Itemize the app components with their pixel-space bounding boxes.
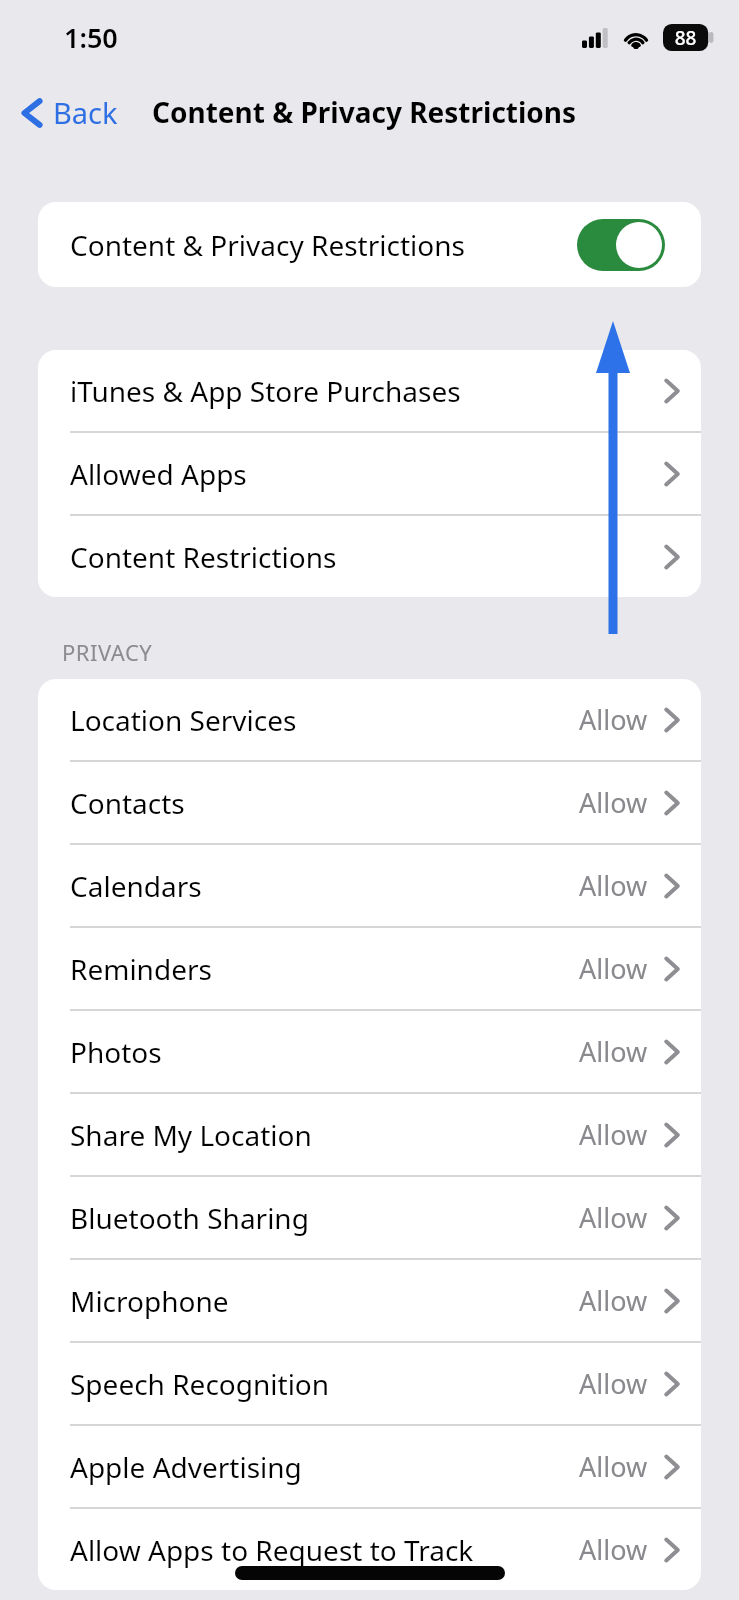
- staticText: Allow Apps to Request to Track: [70, 1531, 579, 1569]
- button[interactable]: Content Restrictions: [38, 516, 701, 597]
- staticText: Calendars: [70, 867, 579, 905]
- staticText: Apple Advertising: [70, 1448, 579, 1486]
- staticText: Content & Privacy Restrictions: [152, 93, 577, 131]
- button[interactable]: Back: [14, 87, 126, 138]
- staticText: Content & Privacy Restrictions: [70, 226, 465, 264]
- staticText: Allow: [579, 1282, 648, 1319]
- staticText: Allow: [579, 1365, 648, 1402]
- staticText: PRIVACY: [62, 637, 153, 667]
- button[interactable]: Calendars: [38, 845, 701, 926]
- button[interactable]: Allow Apps to Request to Track: [38, 1509, 701, 1590]
- staticText: Microphone: [70, 1282, 579, 1320]
- staticText: Photos: [70, 1033, 579, 1071]
- staticText: Allow: [579, 1199, 648, 1236]
- staticText: 1:50: [64, 19, 118, 56]
- staticText: Reminders: [70, 950, 579, 988]
- button[interactable]: Share My Location: [38, 1094, 701, 1175]
- staticText: Allowed Apps: [70, 455, 664, 493]
- staticText: Contacts: [70, 784, 579, 822]
- staticText: Allow: [579, 1033, 648, 1070]
- button[interactable]: Apple Advertising: [38, 1426, 701, 1507]
- button[interactable]: Allowed Apps: [38, 433, 701, 514]
- button[interactable]: Bluetooth Sharing: [38, 1177, 701, 1258]
- staticText: Location Services: [70, 701, 579, 739]
- button[interactable]: Contacts: [38, 762, 701, 843]
- staticText: Bluetooth Sharing: [70, 1199, 579, 1237]
- staticText: Allow: [579, 701, 648, 738]
- button[interactable]: Photos: [38, 1011, 701, 1092]
- staticText: Content Restrictions: [70, 538, 664, 576]
- button[interactable]: Location Services: [38, 679, 701, 760]
- staticText: Allow: [579, 784, 648, 821]
- button[interactable]: Speech Recognition: [38, 1343, 701, 1424]
- staticText: Allow: [579, 950, 648, 987]
- staticText: Back: [53, 93, 118, 132]
- staticText: Allow: [579, 1448, 648, 1485]
- button[interactable]: iTunes & App Store Purchases: [38, 350, 701, 431]
- staticText: Allow: [579, 1531, 648, 1568]
- button[interactable]: Reminders: [38, 928, 701, 1009]
- staticText: Allow: [579, 867, 648, 904]
- staticText: Allow: [579, 1116, 648, 1153]
- staticText: iTunes & App Store Purchases: [70, 372, 664, 410]
- button[interactable]: Content & Privacy Restrictions: [38, 202, 701, 287]
- staticText: 88: [663, 25, 708, 51]
- staticText: Speech Recognition: [70, 1365, 579, 1403]
- button[interactable]: Content and Privacy Restrictions toggle,…: [577, 219, 665, 271]
- staticText: Share My Location: [70, 1116, 579, 1154]
- button[interactable]: Microphone: [38, 1260, 701, 1341]
